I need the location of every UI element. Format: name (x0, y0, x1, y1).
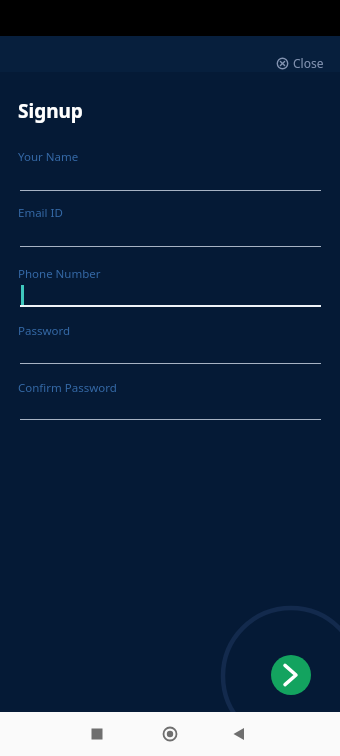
button[interactable]: Your Name (0, 149, 340, 193)
button[interactable]: Close (273, 51, 328, 75)
staticText: Close (293, 55, 324, 71)
staticText: Confirm Password (18, 380, 117, 396)
button[interactable]: Email ID (0, 205, 340, 249)
staticText: Email ID (18, 205, 63, 221)
staticText: Phone Number (18, 266, 101, 282)
staticText: Signup (18, 98, 83, 124)
button[interactable]: Password (0, 323, 340, 366)
staticText: Password (18, 323, 71, 339)
button[interactable]: Phone Number (0, 266, 340, 308)
button[interactable]: Confirm Password (0, 380, 340, 422)
staticText: Your Name (18, 149, 79, 165)
button[interactable] (271, 655, 311, 695)
